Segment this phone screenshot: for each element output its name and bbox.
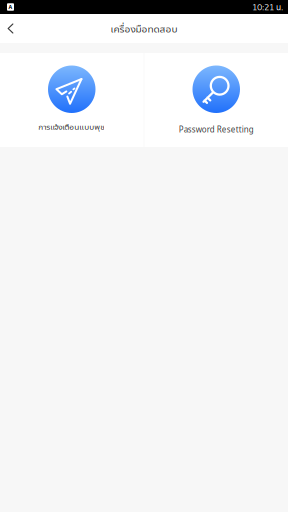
staticText: A	[8, 3, 12, 11]
staticText: Password Resetting	[179, 124, 254, 135]
button[interactable]: Password Resetting	[144, 53, 288, 147]
staticText: เครื่องมือทดสอบ	[110, 22, 177, 35]
button[interactable]: Back	[0, 14, 21, 43]
staticText: 10:21 น.	[252, 1, 283, 13]
staticText: การแจ้งเตือนแบบพุช	[38, 121, 105, 132]
button[interactable]: การแจ้งเตือนแบบพุช	[0, 53, 143, 147]
